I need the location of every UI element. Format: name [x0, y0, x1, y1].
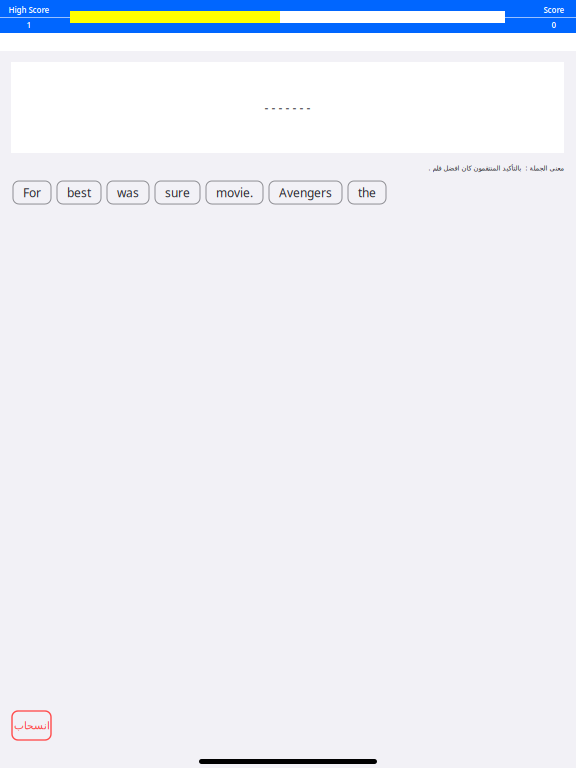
staticText: انسحاب [13, 719, 49, 731]
staticText: Score [543, 5, 564, 15]
staticText: 1 [26, 20, 31, 30]
button[interactable]: Avengers [269, 181, 342, 204]
button[interactable]: the [348, 181, 386, 204]
staticText: the [358, 184, 376, 200]
button[interactable]: انسحاب [12, 711, 51, 740]
staticText: Avengers [279, 184, 332, 200]
staticText: 0 [551, 20, 556, 30]
staticText: sure [165, 184, 190, 200]
button[interactable]: sure [155, 181, 200, 204]
button[interactable]: best [57, 181, 101, 204]
staticText: For [23, 184, 41, 200]
staticText: معنى الجملة : بالتأكيد المنتقمون كان افض… [428, 164, 564, 172]
staticText: High Score [8, 5, 49, 15]
staticText: was [117, 184, 139, 200]
staticText: movie. [216, 184, 253, 200]
button[interactable]: movie. [206, 181, 263, 204]
staticText: best [67, 184, 91, 200]
staticText: - - - - - - - [264, 99, 310, 115]
button[interactable]: was [107, 181, 149, 204]
button[interactable]: For [13, 181, 51, 204]
